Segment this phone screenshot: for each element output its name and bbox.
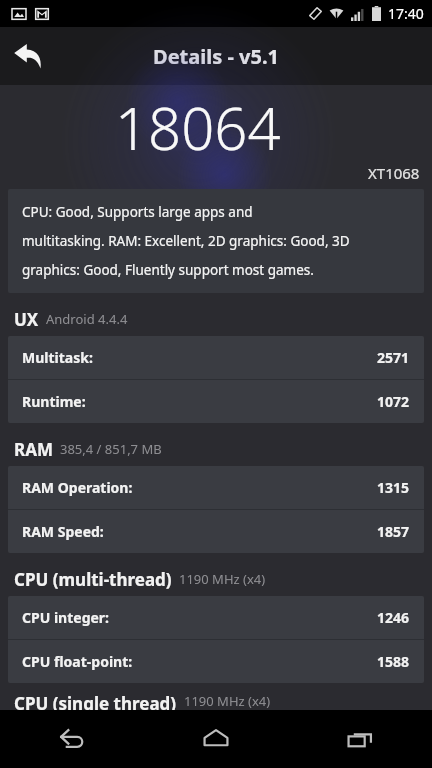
staticText: 1315: [377, 478, 410, 497]
staticText: 2571: [377, 348, 410, 367]
button[interactable]: RAM Operation:: [8, 466, 424, 509]
staticText: 1588: [377, 652, 410, 671]
staticText: 1246: [377, 608, 410, 627]
button[interactable]: Multitask:: [8, 336, 424, 379]
button[interactable]: Recent apps: [288, 710, 432, 768]
staticText: graphics: Good, Fluently support most ga…: [22, 261, 314, 279]
staticText: Multitask:: [22, 348, 93, 367]
staticText: 385,4 / 851,7 MB: [60, 440, 162, 458]
staticText: CPU (multi-thread): [14, 568, 172, 591]
staticText: 18064: [115, 88, 281, 167]
staticText: RAM Operation:: [22, 478, 133, 497]
staticText: XT1068: [368, 163, 420, 183]
staticText: Android 4.4.4: [46, 310, 128, 328]
staticText: 1072: [377, 392, 410, 411]
staticText: 17:40: [388, 4, 424, 23]
staticText: 1190 MHz (x4): [184, 692, 271, 710]
button[interactable]: CPU: Good, Supports large apps and: [8, 189, 424, 293]
button[interactable]: Home: [144, 710, 288, 768]
staticText: UX: [14, 308, 39, 331]
button[interactable]: CPU float-point:: [8, 640, 424, 683]
staticText: RAM Speed:: [22, 522, 104, 541]
button[interactable]: Back: [0, 710, 144, 768]
staticText: 1857: [377, 522, 410, 541]
staticText: CPU integer:: [22, 608, 110, 627]
staticText: RAM: [14, 438, 53, 461]
staticText: 1190 MHz (x4): [179, 570, 266, 588]
button[interactable]: Back: [0, 28, 56, 84]
staticText: Runtime:: [22, 392, 86, 411]
button[interactable]: RAM Speed:: [8, 510, 424, 553]
staticText: CPU float-point:: [22, 652, 133, 671]
staticText: multitasking. RAM: Excellent, 2D graphic…: [22, 232, 350, 250]
button[interactable]: CPU integer:: [8, 596, 424, 639]
staticText: Details - v5.1: [153, 43, 279, 70]
button[interactable]: Runtime:: [8, 380, 424, 423]
staticText: CPU (single thread): [14, 692, 177, 710]
staticText: CPU: Good, Supports large apps and: [22, 203, 253, 221]
